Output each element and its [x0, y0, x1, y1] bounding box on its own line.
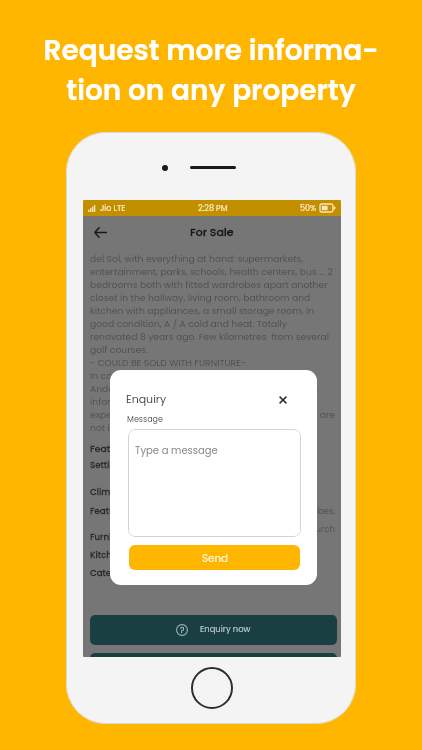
staticText: Category — [90, 567, 132, 579]
staticText: Jio LTE — [100, 203, 126, 214]
staticText: Close to Golf, Close to Sea, Close to — [163, 459, 314, 471]
button[interactable]: Call now — [90, 653, 337, 657]
staticText: Enquiry now — [200, 623, 251, 635]
staticText: Send — [202, 551, 228, 565]
staticText: Kitchen — [90, 549, 123, 561]
staticText: Features — [90, 442, 131, 455]
staticText: ? — [180, 624, 185, 636]
staticText: del Sol, with everything at hand: superm… — [90, 252, 335, 434]
staticText: Enquiry — [126, 391, 167, 406]
staticText: Covered Terrace, Fitted Wardrobes, Near … — [163, 505, 335, 535]
staticText: Type a message — [135, 443, 218, 457]
staticText: Climate Control — [90, 486, 160, 498]
staticText: Message — [127, 414, 163, 425]
button[interactable]: Send — [129, 545, 300, 570]
button[interactable]: Back — [89, 221, 111, 243]
staticText: For Sale — [190, 224, 234, 239]
staticText: Request more informa- tion on any proper… — [0, 31, 422, 110]
button[interactable]: Type a message — [128, 429, 301, 537]
staticText: 2:28 PM — [198, 203, 228, 214]
staticText: Setting — [90, 459, 121, 471]
button[interactable]: Close — [273, 390, 293, 410]
staticText: Features — [90, 505, 128, 517]
staticText: 50% — [300, 203, 317, 214]
button[interactable]: ? — [90, 615, 337, 645]
staticText: Furniture — [90, 531, 129, 543]
